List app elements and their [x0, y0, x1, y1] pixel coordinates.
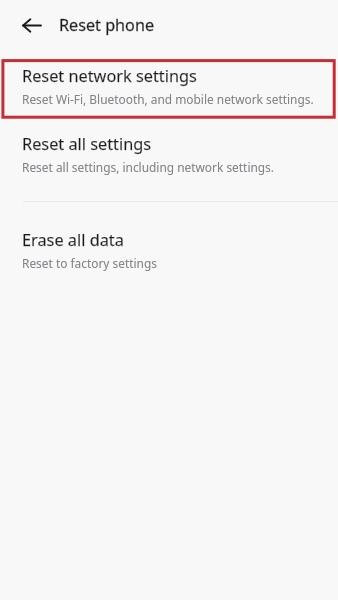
button[interactable]: Reset network settings [0, 59, 338, 115]
staticText: Reset all settings, including network se… [22, 159, 274, 175]
button[interactable]: Back [14, 7, 50, 43]
staticText: Reset network settings [22, 65, 197, 87]
staticText: Reset phone [59, 14, 155, 36]
staticText: Reset Wi-Fi, Bluetooth, and mobile netwo… [22, 91, 314, 107]
staticText: Reset network settings [22, 65, 197, 87]
staticText: Reset phone [59, 14, 155, 36]
button[interactable]: Reset all settings [0, 127, 338, 183]
staticText: Reset all settings [22, 133, 152, 155]
staticText: Reset all settings [22, 133, 152, 155]
staticText: Erase all data [22, 229, 124, 251]
button[interactable]: Erase all data [0, 223, 338, 279]
staticText: Reset to factory settings [22, 255, 157, 271]
staticText: Erase all data [22, 229, 124, 251]
